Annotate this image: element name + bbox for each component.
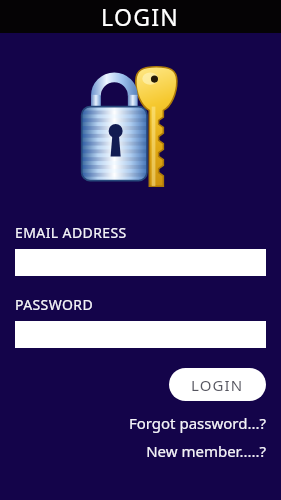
staticText: LOGIN bbox=[191, 375, 244, 395]
other: Lock and key illustration bbox=[63, 63, 203, 191]
button[interactable]: New member.....? bbox=[15, 440, 266, 462]
button[interactable]: LOGIN bbox=[169, 368, 266, 401]
staticText: PASSWORD bbox=[15, 295, 94, 314]
button[interactable]: Forgot password...? bbox=[15, 412, 266, 434]
staticText: New member.....? bbox=[146, 441, 266, 461]
staticText: EMAIL ADDRESS bbox=[15, 223, 127, 242]
staticText: LOGIN bbox=[101, 1, 180, 32]
staticText: Forgot password...? bbox=[128, 413, 266, 433]
